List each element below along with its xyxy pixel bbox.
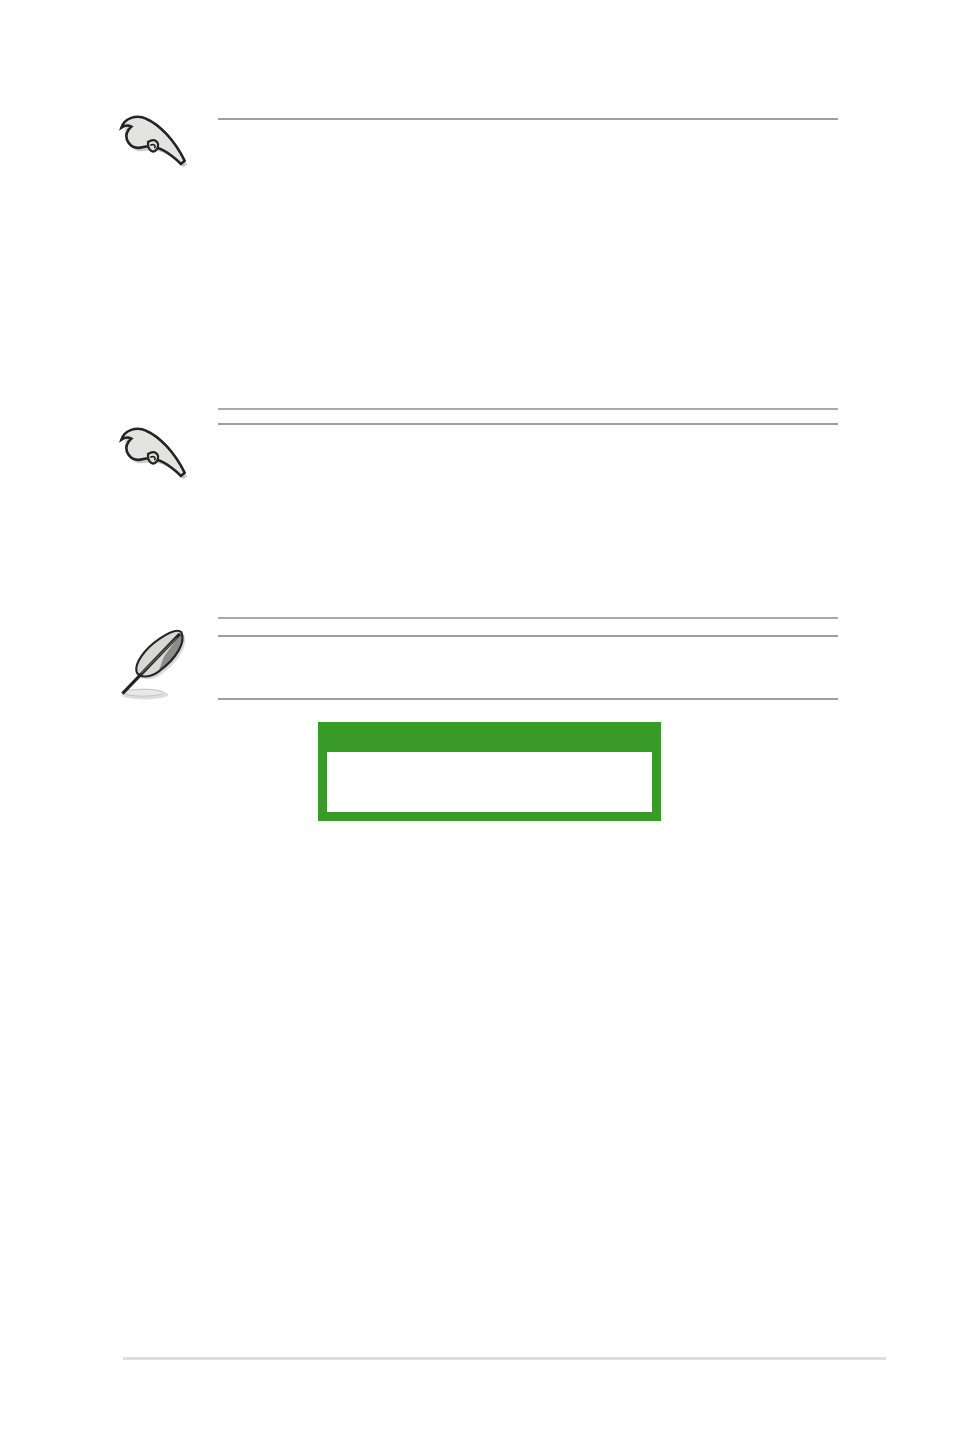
button[interactable]: Note — [116, 624, 192, 706]
button[interactable]: Important note — [114, 106, 188, 178]
button[interactable]: Important note — [114, 418, 188, 490]
button[interactable] — [318, 722, 661, 821]
